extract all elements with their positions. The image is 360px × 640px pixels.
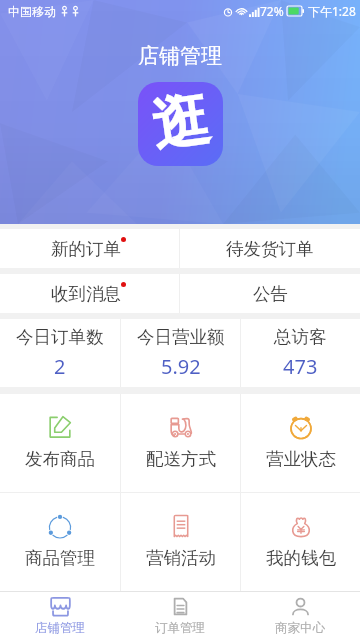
staticText: 商家中心 [275,620,325,636]
staticText: 72% [260,3,284,19]
staticText: 473 [283,353,318,380]
staticText: 收到消息 [51,283,121,305]
staticText: 店铺管理 [35,620,85,636]
staticText: 商品管理 [25,547,95,569]
staticText: 发布商品 [25,448,95,470]
button[interactable]: 今日订单数 [0,319,120,387]
button[interactable]: 新的订单 [0,229,179,268]
button[interactable]: 商品管理 [0,493,120,591]
staticText: 我的钱包 [266,547,336,569]
button[interactable]: 待发货订单 [180,229,360,268]
staticText: 今日订单数 [16,326,104,348]
button[interactable]: 店铺管理 [0,592,120,640]
staticText: 总访客 [274,326,327,348]
button[interactable]: 营业状态 [241,394,360,492]
staticText: 2 [54,353,66,380]
staticText: 逛 [147,83,214,163]
button[interactable]: 今日营业额 [121,319,240,387]
staticText: 店铺管理 [138,43,222,69]
staticText: 待发货订单 [226,238,314,260]
button[interactable]: 配送方式 [121,394,240,492]
button[interactable]: 订单管理 [120,592,240,640]
button[interactable]: 我的钱包 [241,493,360,591]
button[interactable]: 商家中心 [240,592,360,640]
staticText: 配送方式 [146,448,216,470]
button[interactable]: 营销活动 [121,493,240,591]
button[interactable]: 总访客 [241,319,360,387]
staticText: 下午1:28 [308,3,356,19]
staticText: 营销活动 [146,547,216,569]
staticText: 中国移动 [8,4,56,19]
button[interactable]: 收到消息 [0,274,179,313]
staticText: 今日营业额 [137,326,225,348]
staticText: 5.92 [161,353,201,380]
staticText: 新的订单 [51,238,121,260]
button[interactable]: 发布商品 [0,394,120,492]
staticText: 营业状态 [266,448,336,470]
staticText: 订单管理 [155,620,205,636]
staticText: 公告 [253,283,288,305]
button[interactable]: 公告 [180,274,360,313]
